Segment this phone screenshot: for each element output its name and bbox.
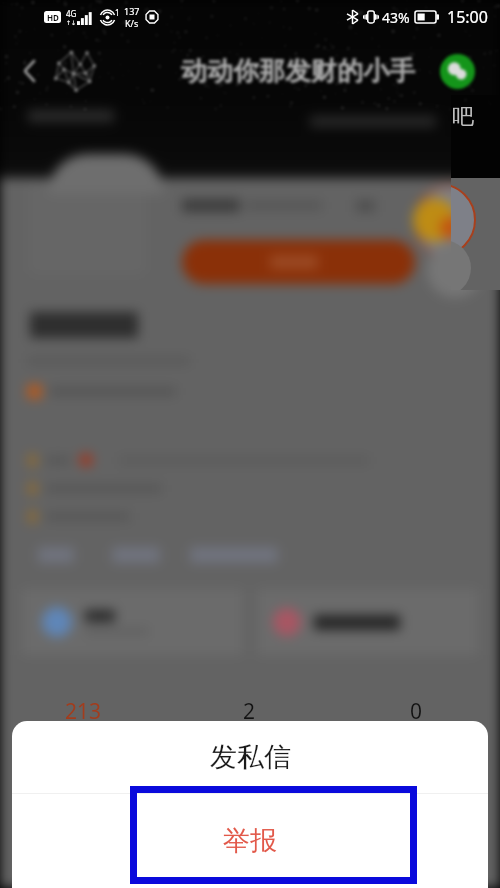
- staticText: 动动你那发财的小手: [181, 55, 415, 88]
- staticText: 0: [410, 697, 423, 726]
- staticText: ↑↓: [66, 19, 77, 26]
- staticText: 4G: [66, 8, 77, 19]
- staticText: 213: [65, 697, 102, 726]
- staticText: HD: [47, 12, 59, 23]
- staticText: K/s: [125, 17, 139, 29]
- button[interactable]: 举报: [12, 794, 488, 888]
- staticText: 15:00: [447, 6, 488, 28]
- staticText: 1: [115, 7, 120, 18]
- staticText: 发私信: [210, 740, 291, 774]
- button[interactable]: WeChat: [440, 54, 475, 89]
- staticText: 43%: [382, 8, 410, 27]
- staticText: 吧: [452, 103, 474, 131]
- staticText: 2: [243, 697, 256, 726]
- staticText: 137: [124, 5, 140, 17]
- button[interactable]: Back: [14, 55, 46, 87]
- staticText: 举报: [223, 824, 277, 858]
- button[interactable]: 发私信: [12, 721, 488, 793]
